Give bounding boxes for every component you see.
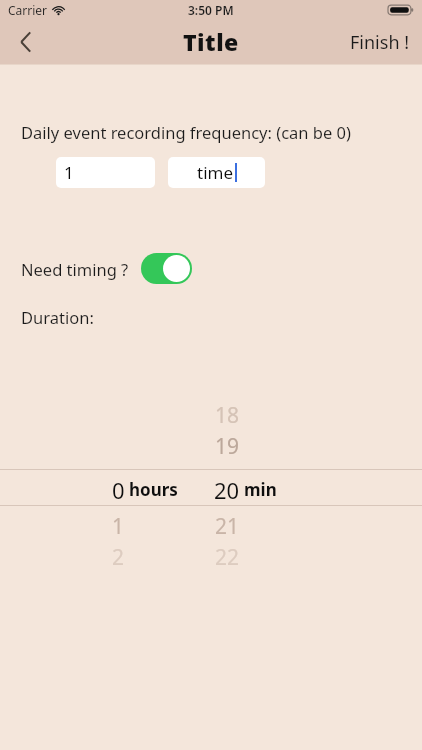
staticText: Need timing ?: [21, 258, 129, 280]
button[interactable]: [0, 470, 422, 505]
staticText: hours: [129, 478, 178, 501]
staticText: time: [197, 161, 234, 184]
button[interactable]: time: [168, 157, 265, 188]
staticText: Carrier: [8, 2, 48, 18]
button[interactable]: Finish !: [338, 20, 422, 64]
staticText: Title: [183, 26, 239, 57]
staticText: Duration:: [21, 306, 94, 328]
button[interactable]: Back: [0, 20, 52, 64]
staticText: 19: [215, 432, 240, 461]
staticText: 18: [215, 401, 240, 430]
staticText: 20: [214, 475, 240, 505]
staticText: 1: [64, 161, 74, 184]
staticText: 2: [112, 543, 125, 572]
button[interactable]: Need timing toggle, on: [141, 253, 192, 284]
staticText: min: [244, 478, 277, 501]
staticText: 1: [112, 512, 125, 541]
staticText: 0: [112, 475, 125, 505]
staticText: 3:50 PM: [188, 2, 234, 18]
staticText: Finish !: [350, 30, 410, 55]
button[interactable]: 1: [56, 157, 155, 188]
staticText: Daily event recording frequency: (can be…: [21, 121, 351, 143]
staticText: 22: [215, 543, 240, 572]
staticText: 21: [215, 512, 240, 541]
